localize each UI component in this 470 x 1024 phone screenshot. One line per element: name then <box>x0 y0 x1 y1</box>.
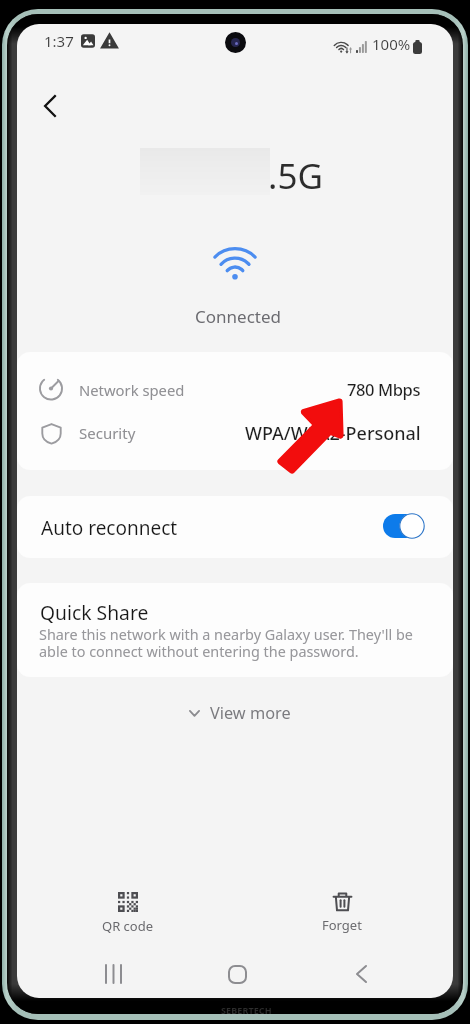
staticText: 100% <box>372 34 411 54</box>
staticText: Auto reconnect <box>41 515 178 541</box>
staticText: Connected <box>195 305 281 328</box>
staticText: Quick Share <box>40 599 149 625</box>
button[interactable]: Back <box>30 86 70 126</box>
button[interactable]: Back <box>334 956 389 992</box>
button[interactable] <box>17 583 453 677</box>
staticText: View more <box>210 702 291 724</box>
button[interactable] <box>17 496 453 558</box>
button[interactable]: View more <box>174 694 306 732</box>
staticText: Forget <box>322 916 362 934</box>
staticText: Share this network with a nearby Galaxy … <box>39 625 429 662</box>
staticText: QR code <box>102 917 154 935</box>
button[interactable]: QR code <box>88 874 168 945</box>
staticText: .5G <box>268 152 323 200</box>
staticText: 780 Mbps <box>347 378 421 400</box>
staticText: Network speed <box>79 380 185 400</box>
staticText: WPA/WPA2-Personal <box>245 421 421 446</box>
button[interactable]: Home <box>210 956 265 992</box>
staticText: Security <box>79 423 136 443</box>
button[interactable]: Recents <box>86 956 141 992</box>
staticText: SEBERTECH <box>221 1004 272 1016</box>
button[interactable]: Forget <box>302 874 382 944</box>
staticText: 1:37 <box>44 31 74 51</box>
